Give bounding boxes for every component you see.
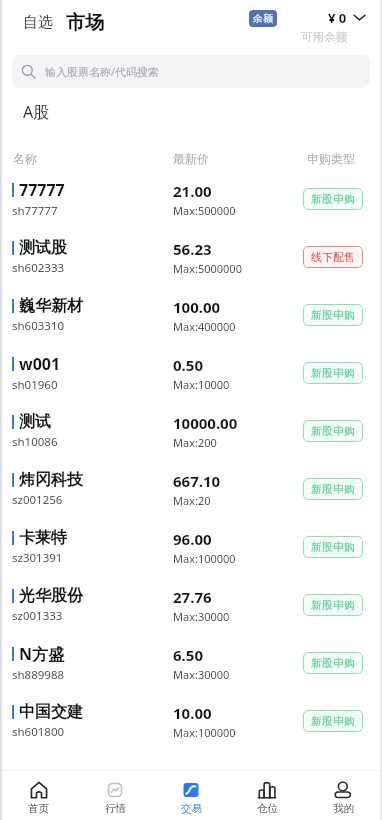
staticText: sh603310 [12,318,65,334]
staticText: 新股申购 [311,366,355,380]
button[interactable]: 新股申购 [303,420,363,442]
staticText: 首页 [28,802,49,815]
staticText: sh601800 [12,724,65,740]
button[interactable]: 我的 [305,776,381,815]
staticText: sh602333 [12,260,65,276]
staticText: 测试股 [19,238,67,258]
staticText: 新股申购 [311,540,355,554]
button[interactable]: 新股申购 [303,304,363,326]
staticText: 光华股份 [19,586,83,606]
button[interactable]: 新股申购 [303,652,363,674]
staticText: 名称 [13,151,37,166]
staticText: sh889988 [12,667,65,683]
button[interactable]: 市场 [66,11,104,35]
button[interactable]: 输入股票名称/代码搜索 [12,55,370,88]
staticText: sz001333 [12,608,63,624]
staticText: 10.00 [173,703,212,723]
staticText: 仓位 [257,802,278,815]
button[interactable]: 测试 [0,402,382,460]
staticText: 交易 [181,802,202,815]
button[interactable]: w001 [0,344,382,402]
button[interactable]: 新股申购 [303,478,363,500]
button[interactable]: 中国交建 [0,692,382,750]
staticText: 新股申购 [311,424,355,438]
staticText: Max:200 [173,435,217,450]
staticText: Max:100000 [173,551,236,566]
staticText: A股 [23,101,50,123]
button[interactable]: 光华股份 [0,576,382,634]
staticText: sz001256 [12,492,63,508]
button[interactable]: 新股申购 [303,594,363,616]
staticText: 56.23 [173,239,212,259]
staticText: sz301391 [12,550,63,566]
staticText: 炜冈科技 [19,470,83,490]
staticText: Max:20 [173,493,211,508]
staticText: 100.00 [173,297,221,317]
staticText: 21.00 [173,181,212,201]
staticText: 行情 [105,802,126,815]
staticText: ¥ 0 [328,9,347,27]
staticText: 测试 [19,412,51,432]
staticText: Max:10000 [173,377,230,392]
staticText: 线下配售 [311,250,355,264]
staticText: 最新价 [173,151,209,166]
staticText: 新股申购 [311,656,355,670]
button[interactable]: ¥ 0 [301,9,365,44]
button[interactable]: 新股申购 [303,536,363,558]
staticText: 余额 [253,12,273,25]
staticText: Max:100000 [173,725,236,740]
staticText: 667.10 [173,471,221,491]
staticText: sh01960 [12,377,58,393]
button[interactable]: 巍华新材 [0,286,382,344]
staticText: 77777 [19,179,65,201]
staticText: 6.50 [173,645,203,665]
staticText: 巍华新材 [19,296,83,316]
button[interactable]: 行情 [77,776,153,815]
button[interactable]: 余额 [249,10,277,27]
staticText: 中国交建 [19,702,83,722]
button[interactable]: 测试股 [0,228,382,286]
button[interactable]: 线下配售 [303,246,363,268]
staticText: Max:5000000 [173,261,242,276]
button[interactable]: 自选 [23,13,53,32]
staticText: Max:400000 [173,319,236,334]
staticText: 0.50 [173,355,203,375]
button[interactable]: 卡莱特 [0,518,382,576]
button[interactable]: 新股申购 [303,188,363,210]
button[interactable]: 首页 [0,776,77,815]
staticText: Max:30000 [173,609,230,624]
staticText: Max:30000 [173,667,230,682]
staticText: 新股申购 [311,598,355,612]
staticText: 27.76 [173,587,212,607]
staticText: sh10086 [12,434,58,450]
button[interactable]: 炜冈科技 [0,460,382,518]
staticText: 申购类型 [307,151,355,166]
button[interactable]: 新股申购 [303,362,363,384]
staticText: sh77777 [12,203,58,219]
staticText: 新股申购 [311,192,355,206]
staticText: Max:500000 [173,203,236,218]
button[interactable]: 仓位 [229,776,305,815]
staticText: 自选 [23,13,53,32]
staticText: 10000.00 [173,413,238,433]
staticText: N方盛 [19,643,65,665]
staticText: 新股申购 [311,714,355,728]
staticText: 新股申购 [311,482,355,496]
button[interactable]: 新股申购 [303,710,363,732]
button[interactable]: 交易 [153,776,229,815]
staticText: 输入股票名称/代码搜索 [45,64,160,79]
staticText: 96.00 [173,529,212,549]
staticText: 新股申购 [311,308,355,322]
staticText: w001 [19,353,61,375]
staticText: 卡莱特 [19,528,67,548]
staticText: 我的 [333,802,354,815]
staticText: 市场 [66,11,104,35]
button[interactable]: 77777 [0,170,382,228]
staticText: 可用余额 [301,30,347,44]
button[interactable]: N方盛 [0,634,382,692]
